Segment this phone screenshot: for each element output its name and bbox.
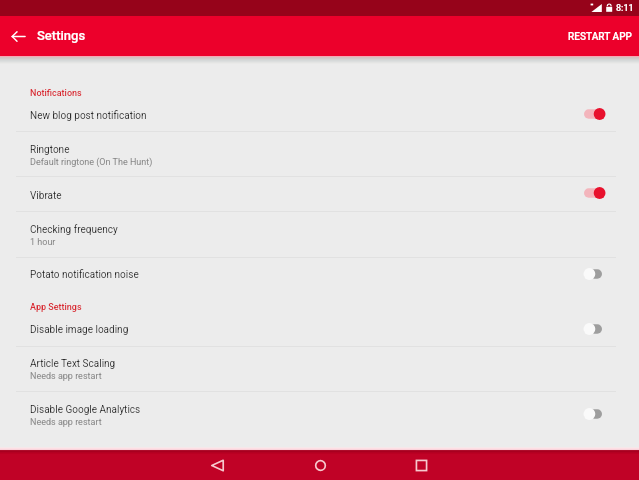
staticText: Potato notification noise	[30, 269, 139, 281]
staticText: RESTART APP	[568, 31, 632, 43]
button[interactable]: Vibrate	[0, 176, 639, 211]
staticText: Notifications	[30, 88, 82, 99]
staticText: Checking frequency	[30, 224, 118, 236]
button[interactable]: Checking frequency	[0, 211, 639, 257]
button[interactable]: Home	[300, 450, 341, 480]
staticText: New blog post notification	[30, 110, 147, 122]
staticText: Needs app restart	[30, 417, 102, 428]
staticText: Vibrate	[30, 190, 62, 202]
staticText: Default ringtone (On The Hunt)	[30, 157, 153, 168]
button[interactable]: Back	[197, 450, 238, 480]
button[interactable]: Disable Google Analytics	[0, 391, 639, 436]
button[interactable]: Ringtone	[0, 131, 639, 176]
staticText: App Settings	[30, 302, 82, 313]
staticText: 8:11	[616, 3, 634, 14]
staticText: 1 hour	[30, 237, 56, 248]
staticText: Ringtone	[30, 144, 70, 156]
button[interactable]: RESTART APP	[561, 16, 639, 56]
staticText: Disable image loading	[30, 324, 129, 336]
button[interactable]: Recent apps	[400, 450, 442, 480]
button[interactable]: Article Text Scaling	[0, 346, 639, 391]
button[interactable]: Potato notification noise	[0, 257, 639, 291]
staticText: Article Text Scaling	[30, 358, 116, 370]
staticText: Needs app restart	[30, 371, 102, 382]
button[interactable]: Navigate up	[0, 16, 36, 56]
button[interactable]: New blog post notification	[0, 97, 639, 131]
staticText: Disable Google Analytics	[30, 404, 141, 416]
staticText: Settings	[37, 28, 86, 43]
button[interactable]: Disable image loading	[0, 312, 639, 346]
